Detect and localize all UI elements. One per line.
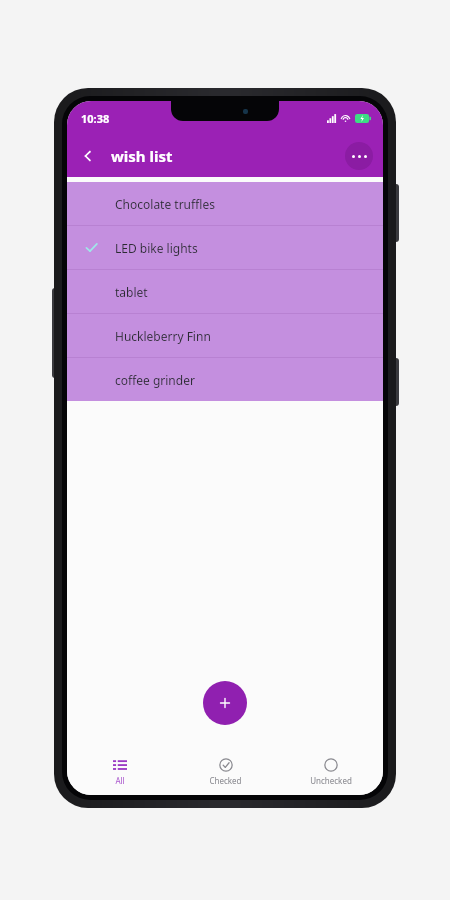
staticText: coffee grinder bbox=[115, 372, 195, 388]
staticText: Checked bbox=[209, 775, 242, 786]
staticText: All bbox=[115, 775, 125, 786]
staticText: Chocolate truffles bbox=[115, 196, 215, 212]
staticText: Huckleberry Finn bbox=[115, 328, 211, 344]
staticText: Unchecked bbox=[310, 775, 352, 786]
button[interactable]: More options bbox=[345, 142, 373, 170]
button[interactable]: tablet bbox=[67, 270, 383, 313]
button[interactable]: Huckleberry Finn bbox=[67, 314, 383, 357]
staticText: 10:38 bbox=[81, 111, 110, 126]
staticText: wish list bbox=[111, 146, 173, 166]
button[interactable]: coffee grinder bbox=[67, 358, 383, 401]
button[interactable]: Checked bbox=[173, 749, 278, 795]
button[interactable]: Unchecked bbox=[278, 749, 383, 795]
button[interactable]: All bbox=[67, 749, 173, 795]
staticText: LED bike lights bbox=[115, 240, 198, 256]
button[interactable]: Add item bbox=[203, 681, 247, 725]
staticText: tablet bbox=[115, 284, 148, 300]
button[interactable]: LED bike lights bbox=[67, 226, 383, 269]
button[interactable]: Back bbox=[73, 141, 103, 171]
button[interactable]: Chocolate truffles bbox=[67, 182, 383, 225]
